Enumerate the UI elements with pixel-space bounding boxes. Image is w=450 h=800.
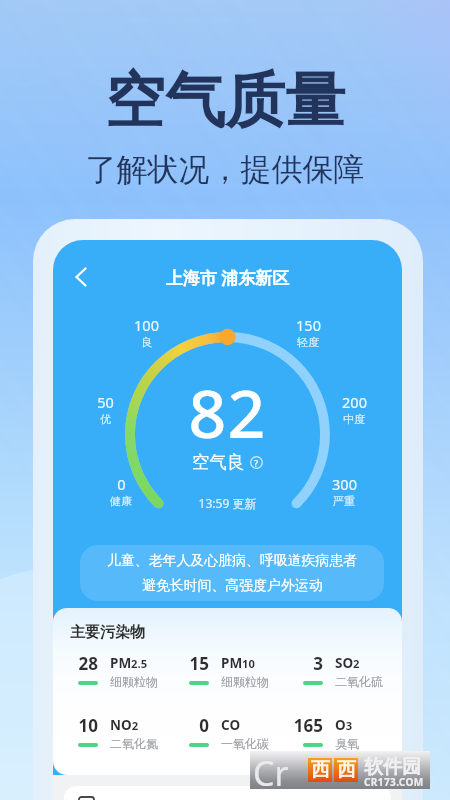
button[interactable]: 3 bbox=[287, 654, 392, 688]
staticText: 严重 bbox=[333, 494, 355, 508]
staticText: 软件园 bbox=[364, 755, 421, 779]
button[interactable]: 28 bbox=[62, 654, 167, 688]
button[interactable]: 10 bbox=[62, 716, 167, 750]
button[interactable]: 165 bbox=[287, 716, 392, 750]
button[interactable]: Back bbox=[64, 260, 98, 294]
staticText: 50 bbox=[97, 392, 114, 412]
staticText: SO2 bbox=[335, 654, 360, 672]
staticText: PM2.5 bbox=[110, 654, 148, 672]
staticText: O3 bbox=[335, 716, 353, 734]
staticText: 0 bbox=[199, 714, 209, 737]
staticText: 健康 bbox=[110, 494, 132, 508]
button[interactable]: 儿童、老年人及心脏病、呼吸道疾病患者 bbox=[80, 545, 384, 601]
staticText: 避免长时间、高强度户外运动 bbox=[142, 577, 323, 595]
staticText: NO2 bbox=[110, 716, 139, 734]
staticText: 100 bbox=[134, 315, 159, 335]
staticText: 空气良 bbox=[192, 451, 245, 473]
staticText: 优 bbox=[100, 412, 111, 426]
staticText: 儿童、老年人及心脏病、呼吸道疾病患者 bbox=[107, 552, 358, 570]
staticText: PM10 bbox=[221, 654, 255, 672]
staticText: 15 bbox=[189, 652, 209, 675]
staticText: 了解状况，提供保障 bbox=[0, 150, 450, 189]
staticText: 一氧化碳 bbox=[221, 736, 269, 751]
staticText: 二氧化硫 bbox=[335, 674, 383, 689]
staticText: 上海市 浦东新区 bbox=[53, 266, 402, 289]
staticText: 轻度 bbox=[297, 335, 319, 349]
staticText: 细颗粒物 bbox=[110, 674, 158, 689]
staticText: 西 bbox=[337, 758, 356, 782]
staticText: 主要污染物 bbox=[70, 623, 145, 642]
button[interactable]: 15 bbox=[173, 654, 278, 688]
staticText: 良 bbox=[141, 335, 152, 349]
staticText: CO bbox=[221, 716, 241, 734]
staticText: 150 bbox=[296, 315, 321, 335]
staticText: 300 bbox=[332, 474, 357, 494]
staticText: 空气质量 bbox=[0, 63, 450, 139]
staticText: 西 bbox=[311, 758, 330, 782]
staticText: 200 bbox=[342, 392, 367, 412]
staticText: CR173.COM bbox=[364, 775, 424, 789]
staticText: 中度 bbox=[343, 412, 365, 426]
staticText: 165 bbox=[293, 714, 323, 737]
staticText: 10 bbox=[78, 714, 98, 737]
staticText: ? bbox=[254, 457, 259, 469]
button[interactable]: 0 bbox=[173, 716, 278, 750]
staticText: Cr bbox=[253, 750, 289, 788]
staticText: 细颗粒物 bbox=[221, 674, 269, 689]
staticText: 3 bbox=[313, 652, 323, 675]
staticText: 13:59 更新 bbox=[53, 495, 402, 511]
staticText: 28 bbox=[78, 652, 98, 675]
staticText: 82 bbox=[53, 367, 402, 457]
staticText: 0 bbox=[117, 474, 126, 494]
staticText: 臭氧 bbox=[335, 736, 359, 751]
button[interactable]: Help bbox=[250, 456, 263, 469]
staticText: 二氧化氮 bbox=[110, 736, 158, 751]
